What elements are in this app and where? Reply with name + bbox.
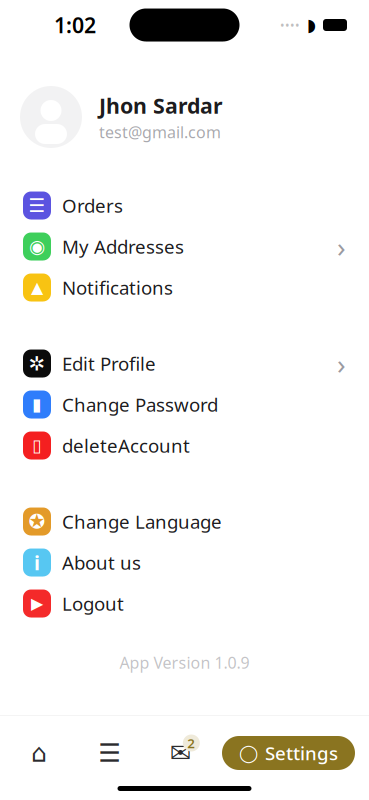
staticText: deleteAccount — [62, 433, 190, 458]
staticText: ☰ — [28, 195, 45, 216]
staticText: About us — [62, 550, 141, 575]
staticText: test@gmail.com — [99, 121, 221, 143]
staticText: ▶ — [31, 594, 43, 613]
staticText: 1:02 — [54, 11, 96, 39]
button[interactable]: i — [0, 542, 369, 583]
staticText: ✉ — [170, 739, 191, 767]
staticText: ⌂ — [31, 739, 47, 767]
staticText: › — [337, 228, 346, 265]
button[interactable]: Inbox — [151, 731, 209, 775]
button[interactable]: ◯ — [222, 736, 355, 770]
button[interactable]: ✲ — [0, 343, 369, 384]
staticText: Orders — [62, 193, 123, 218]
button[interactable]: ▲ — [0, 267, 369, 308]
staticText: Jhon Sardar — [99, 91, 223, 119]
staticText: ◯ — [239, 743, 258, 763]
staticText: i — [34, 549, 40, 576]
button[interactable]: ▮ — [0, 384, 369, 425]
staticText: ◉ — [29, 236, 45, 257]
staticText: ▯ — [32, 436, 42, 455]
staticText: ☰ — [98, 739, 121, 767]
staticText: ▲ — [31, 278, 43, 297]
staticText: Change Language — [62, 509, 222, 534]
staticText: 2 — [187, 734, 195, 752]
button[interactable]: ✪ — [0, 501, 369, 542]
staticText: › — [337, 345, 346, 382]
staticText: ◗ — [307, 15, 316, 35]
staticText: Notifications — [62, 275, 173, 300]
staticText: Edit Profile — [62, 351, 156, 376]
button[interactable]: Home — [10, 731, 68, 775]
staticText: ✪ — [28, 510, 45, 533]
button[interactable]: ☰ — [0, 185, 369, 226]
staticText: My Addresses — [62, 234, 184, 259]
staticText: App Version 1.0.9 — [119, 652, 249, 673]
button[interactable]: ▶ — [0, 583, 369, 624]
staticText: •••• — [280, 17, 300, 33]
staticText: Logout — [62, 591, 124, 616]
staticText: Settings — [265, 741, 338, 765]
button[interactable]: ◉ — [0, 226, 369, 267]
staticText: Change Password — [62, 392, 218, 417]
staticText: ✲ — [28, 352, 45, 375]
button[interactable]: Orders — [81, 731, 139, 775]
staticText: ▮ — [32, 395, 42, 414]
button[interactable]: ▯ — [0, 425, 369, 466]
